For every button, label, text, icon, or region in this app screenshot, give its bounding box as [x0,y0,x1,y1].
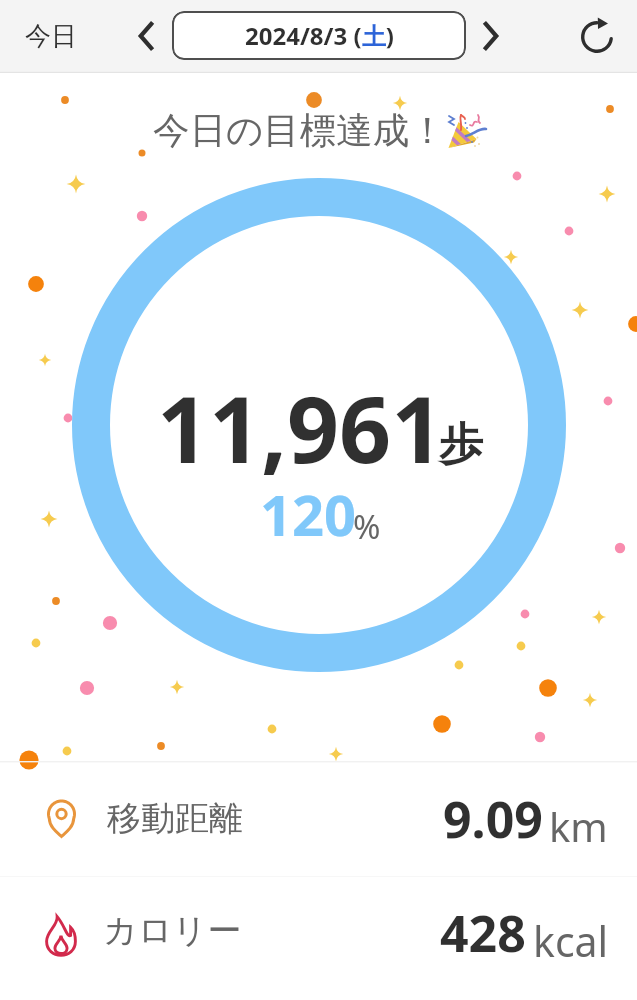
staticText: km [549,799,608,853]
staticText: カロリー [103,909,242,952]
button[interactable]: カロリー [0,876,637,1000]
staticText: 歩 [439,417,483,472]
button[interactable]: 移動距離 [0,762,637,875]
staticText: kcal [533,913,609,969]
staticText: % [353,504,381,549]
button[interactable]: 2024/8/3 (土) [172,11,466,60]
staticText: 120 [260,476,357,552]
button[interactable]: Previous day [123,12,171,60]
button[interactable]: 今日 [12,4,90,68]
button[interactable]: Refresh [573,13,621,61]
staticText: 2024/8/3 (土) [245,19,394,52]
button[interactable]: Next day [466,12,514,60]
staticText: 11,961 [157,366,444,490]
staticText: 移動距離 [107,797,243,840]
staticText: 9.09 [443,785,543,853]
staticText: 428 [440,899,526,967]
staticText: 今日の目標達成！ [153,108,446,154]
staticText: 今日 [25,20,77,53]
